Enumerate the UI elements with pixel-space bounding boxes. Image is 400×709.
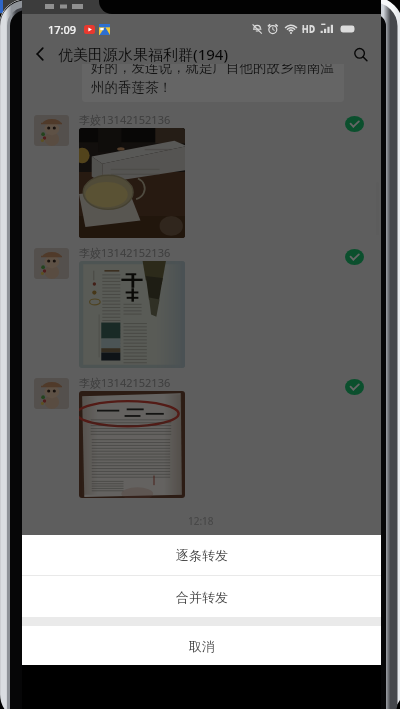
button[interactable]: 取消 <box>22 626 381 665</box>
button[interactable]: Selected <box>345 379 364 395</box>
button[interactable]: Back <box>22 44 58 64</box>
button[interactable] <box>34 115 69 146</box>
button[interactable] <box>34 248 69 279</box>
button[interactable] <box>34 378 69 409</box>
button[interactable]: 好的，发连说，就是广目他的故乡南南温 州的香莲茶！ <box>82 64 344 102</box>
staticText: 李姣13142152136 <box>79 245 171 260</box>
button[interactable] <box>79 391 185 498</box>
staticText: 合并转发 <box>176 589 228 605</box>
button[interactable] <box>79 128 185 238</box>
staticText: 取消 <box>189 638 215 654</box>
button[interactable]: Selected <box>345 116 364 132</box>
button[interactable]: 逐条转发 <box>22 535 381 575</box>
button[interactable]: Selected <box>345 249 364 265</box>
button[interactable]: 合并转发 <box>22 576 381 617</box>
button[interactable]: Search <box>339 44 381 64</box>
staticText: 17:09 <box>48 22 77 37</box>
staticText: 优美田源水果福利群(194) <box>58 44 229 64</box>
staticText: 好的，发连说，就是广目他的故乡南南温 州的香莲茶！ <box>91 64 334 96</box>
button[interactable] <box>79 261 185 368</box>
staticText: 李姣13142152136 <box>79 375 171 390</box>
staticText: 逐条转发 <box>176 547 228 563</box>
staticText: 12:18 <box>188 514 214 528</box>
staticText: 李姣13142152136 <box>79 112 171 127</box>
